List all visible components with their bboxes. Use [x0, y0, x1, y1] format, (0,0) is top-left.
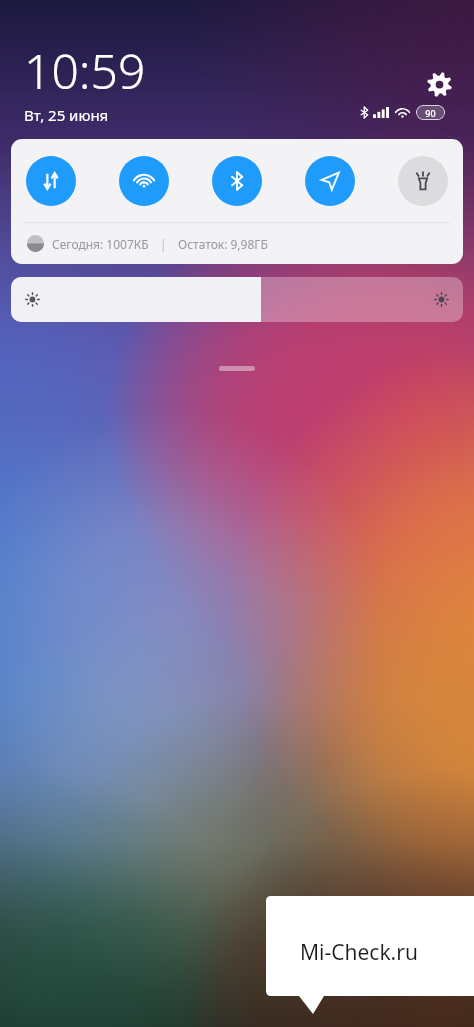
staticText: Mi-Check.ru	[300, 938, 418, 967]
staticText: 90	[425, 107, 436, 119]
staticText: |	[160, 236, 167, 252]
button[interactable]: Bluetooth	[212, 156, 262, 206]
staticText: Сегодня: 1007КБ	[52, 236, 149, 252]
button[interactable]: Settings	[419, 64, 459, 104]
button[interactable]: Brightness	[11, 277, 463, 322]
button[interactable]: Flashlight	[398, 156, 448, 206]
staticText: 10:59	[24, 38, 146, 103]
staticText: Остаток: 9,98ГБ	[178, 236, 268, 252]
button[interactable]: Mobile data	[26, 156, 76, 206]
button[interactable]: Location	[305, 156, 355, 206]
staticText: Вт, 25 июня	[24, 105, 109, 125]
button[interactable]: Wi-Fi	[119, 156, 169, 206]
button[interactable]: Сегодня: 1007КБ	[11, 223, 463, 264]
